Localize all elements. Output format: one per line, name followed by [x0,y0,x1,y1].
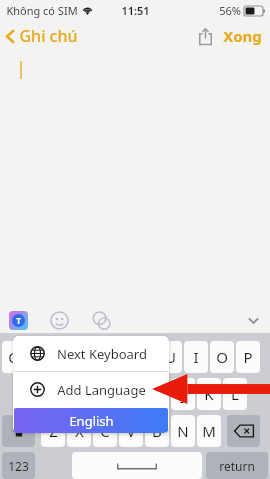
button[interactable]: Add Language [13,372,169,407]
staticText: Next Keyboard [57,345,147,363]
button[interactable]: O [210,341,234,373]
button[interactable]: Hide keyboard [244,311,262,329]
staticText: O [216,347,228,367]
staticText: Ghi chú [19,25,78,47]
button[interactable]: Next Keyboard [13,336,169,371]
button[interactable]: Q [2,341,26,373]
button[interactable]: U [158,341,182,373]
button[interactable]: A [15,378,39,410]
button[interactable]: M [197,415,221,447]
staticText: V [126,421,136,441]
staticText: 56% [219,3,241,18]
button[interactable]: G [119,378,143,410]
staticText: S [49,384,58,404]
button[interactable]: Add [236,451,260,475]
staticText: N [177,421,189,441]
button[interactable] [72,452,202,479]
staticText: T [114,347,123,367]
button[interactable]: R [80,341,104,373]
button[interactable]: L [223,378,247,410]
staticText: A [22,384,32,404]
button[interactable]: Text format [9,311,28,330]
staticText: E [62,347,71,367]
staticText: F [101,384,109,404]
button[interactable]: V [119,415,143,447]
staticText: K [204,384,214,404]
button[interactable]: W [28,341,52,373]
staticText: J [181,384,186,404]
button[interactable]: J [171,378,195,410]
staticText: Z [49,421,58,441]
button[interactable]: N [171,415,195,447]
button[interactable]: E [54,341,78,373]
staticText: G [126,384,137,404]
button[interactable]: Y [132,341,156,373]
button[interactable]: 123 [2,452,35,479]
staticText: M [202,421,216,441]
button[interactable]: P [236,341,260,373]
staticText: R [87,347,97,367]
button[interactable]: Share [191,22,219,50]
staticText: Xong [223,26,262,46]
staticText: Y [140,347,149,367]
staticText: W [33,347,47,367]
staticText: English [69,412,114,430]
button[interactable]: Sticker [49,310,70,331]
button[interactable]: T [106,341,130,373]
button[interactable]: F [93,378,117,410]
staticText: uantrimang [45,435,218,477]
staticText: Q [8,347,20,367]
button[interactable]: X [67,415,91,447]
staticText: H [151,384,163,404]
staticText: 11:51 [121,3,150,18]
button[interactable]: Xong [219,21,270,51]
staticText: I [193,347,199,367]
staticText: T [16,315,21,326]
staticText: L [231,384,239,404]
button[interactable]: Z [41,415,65,447]
staticText: P [243,347,253,367]
button[interactable] [227,415,260,447]
button[interactable]: Ghi chú [0,21,86,51]
staticText: Add Language [57,381,146,399]
staticText: D [74,384,85,404]
button[interactable] [2,415,35,447]
staticText: X [75,421,84,441]
button[interactable]: B [145,415,169,447]
staticText: B [152,421,162,441]
button[interactable]: return [206,452,268,479]
staticText: Không có SIM [6,3,78,18]
button[interactable]: S [41,378,65,410]
button[interactable]: H [145,378,169,410]
button[interactable]: I [184,341,208,373]
staticText: U [165,347,176,367]
staticText: 123 [8,458,29,474]
staticText: return [219,458,255,474]
button[interactable]: English [14,408,168,433]
button[interactable]: C [93,415,117,447]
staticText: C [100,421,110,441]
button[interactable]: Translate [91,310,112,331]
button[interactable]: K [197,378,221,410]
button[interactable]: D [67,378,91,410]
